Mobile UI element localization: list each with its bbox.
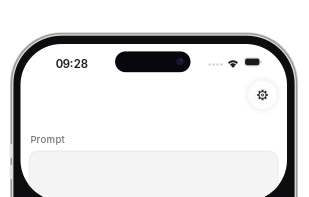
staticText: Prompt [30, 134, 64, 145]
button[interactable]: Settings [242, 75, 282, 115]
staticText: 09:28 [56, 57, 88, 71]
